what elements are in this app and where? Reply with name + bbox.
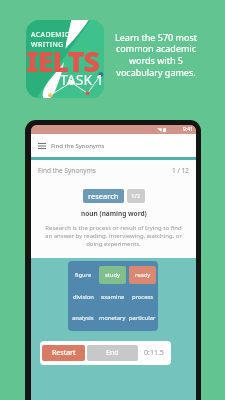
staticText: ready xyxy=(135,271,151,279)
staticText: 1/2 xyxy=(131,192,141,200)
staticText: research xyxy=(88,191,119,201)
staticText: monetary xyxy=(99,314,126,322)
staticText: End xyxy=(106,348,119,358)
staticText: analysis xyxy=(72,314,94,322)
staticText: 0:11.5 xyxy=(144,348,164,358)
staticText: Find the Synonyms xyxy=(51,142,105,150)
staticText: Find the Synonyms xyxy=(38,166,96,175)
button[interactable]: study xyxy=(99,266,126,284)
staticText: study xyxy=(105,271,120,279)
button[interactable]: figure xyxy=(70,266,96,284)
staticText: figure xyxy=(75,271,92,279)
staticText: ACADEMIC xyxy=(31,30,70,40)
staticText: division xyxy=(73,293,94,301)
button[interactable]: research xyxy=(83,189,124,203)
staticText: IELTS xyxy=(26,41,99,80)
button[interactable]: division xyxy=(70,288,96,306)
button[interactable]: examine xyxy=(99,288,126,306)
staticText: Restart xyxy=(52,348,76,358)
button[interactable]: analysis xyxy=(70,310,96,326)
button[interactable]: particular xyxy=(129,310,156,326)
staticText: 9:41 xyxy=(183,126,193,133)
staticText: particular xyxy=(129,314,156,322)
staticText: examine xyxy=(101,293,125,301)
button[interactable]: Menu xyxy=(36,140,47,151)
staticText: 1 / 12 xyxy=(172,166,189,175)
button[interactable]: ready xyxy=(129,266,156,284)
staticText: process xyxy=(132,293,153,301)
staticText: Research is the process or result of try… xyxy=(44,224,183,248)
staticText: Learn the 570 most common academic words… xyxy=(107,31,205,79)
staticText: WRITING xyxy=(31,40,64,50)
button[interactable]: process xyxy=(129,288,156,306)
staticText: noun (naming word) xyxy=(81,209,147,218)
staticText: TASK 1 xyxy=(60,70,104,89)
button[interactable]: Restart xyxy=(42,345,85,361)
button[interactable]: End xyxy=(87,345,138,361)
button[interactable]: monetary xyxy=(99,310,126,326)
